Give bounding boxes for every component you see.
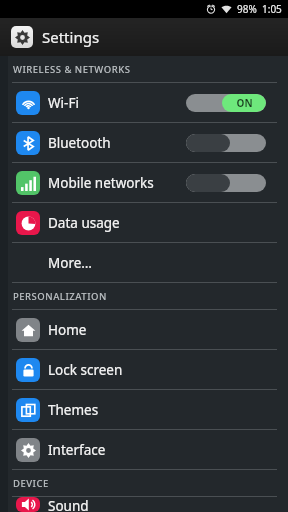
button[interactable]: Mobile networks [0,163,288,202]
button[interactable]: Settings [0,18,288,56]
button[interactable]: Home [0,310,288,349]
button[interactable]: Wi-Fi [0,83,288,122]
button[interactable]: Toggle off [186,134,266,152]
staticText: Lock screen [48,361,123,379]
button[interactable]: Interface [0,430,288,469]
staticText: DEVICE [13,477,49,490]
staticText: Interface [48,441,106,459]
button[interactable]: Toggle off [186,174,266,192]
staticText: 1:05 [262,2,282,16]
staticText: Settings [42,27,100,47]
staticText: 98% [237,2,257,16]
button[interactable]: Lock screen [0,350,288,389]
staticText: Mobile networks [48,174,154,192]
staticText: More… [48,254,93,272]
button[interactable]: Sound [0,497,288,512]
button[interactable]: Themes [0,390,288,429]
staticText: PERSONALIZATION [13,290,107,303]
button[interactable]: Data usage [0,203,288,242]
staticText: Data usage [48,214,120,232]
button[interactable]: Bluetooth [0,123,288,162]
button[interactable]: More… [0,243,288,282]
staticText: Wi-Fi [48,94,79,112]
staticText: Bluetooth [48,134,111,152]
staticText: Home [48,321,87,339]
staticText: Themes [48,401,99,419]
staticText: Sound [48,497,89,512]
button[interactable]: Toggle on [186,94,266,112]
staticText: WIRELESS & NETWORKS [13,63,131,76]
staticText: ON [236,96,253,110]
